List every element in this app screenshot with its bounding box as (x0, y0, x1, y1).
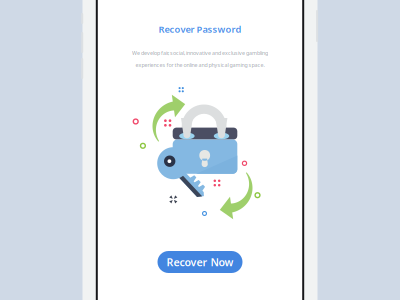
staticText: Recover Now (166, 255, 233, 269)
staticText: We develop fair, social, innovative and … (132, 49, 268, 56)
staticText: Recover Password (158, 23, 241, 35)
button[interactable]: Recover Now (157, 251, 242, 273)
staticText: experiences for the online and physical … (135, 61, 264, 69)
